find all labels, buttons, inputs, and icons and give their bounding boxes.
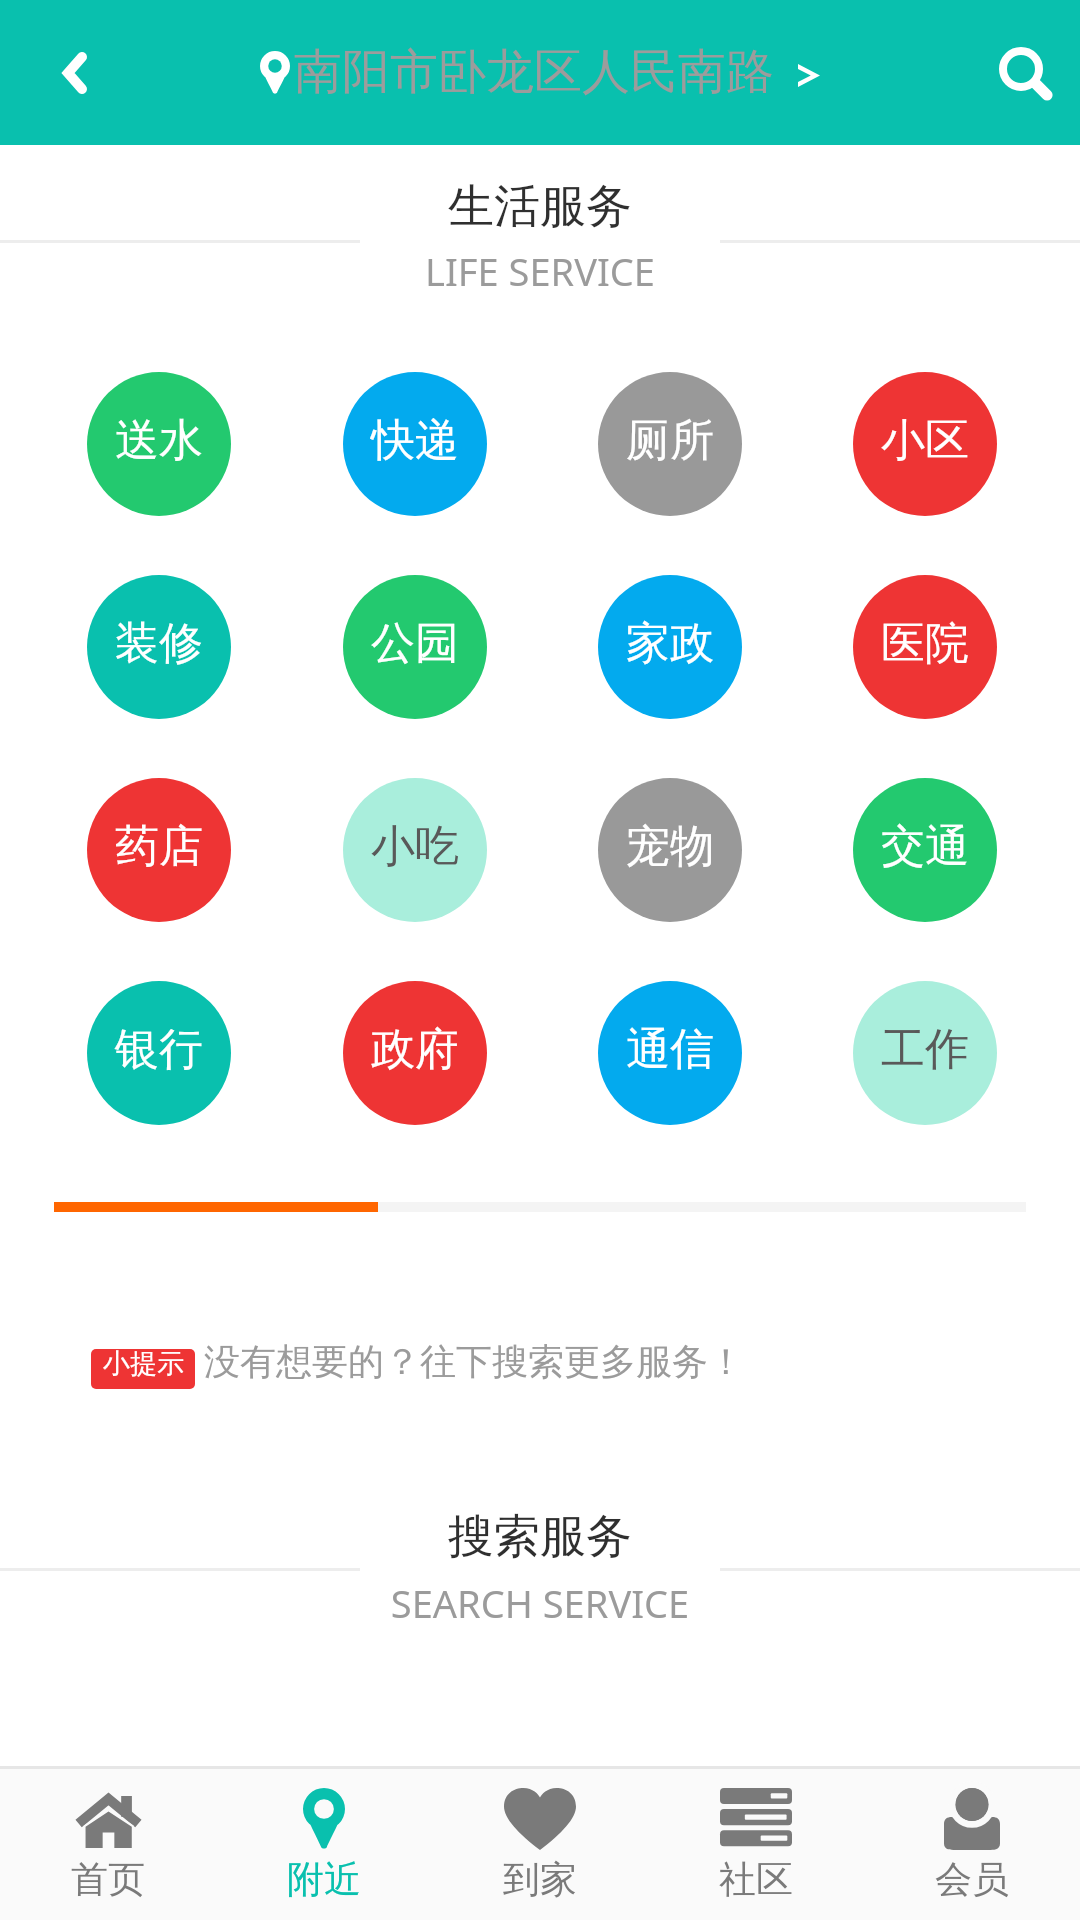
button[interactable]: 附近 — [216, 1769, 432, 1830]
button[interactable]: 快递 — [343, 372, 487, 516]
staticText: 装修 — [115, 616, 203, 671]
staticText: 附近 — [216, 1856, 432, 1903]
staticText: 社区 — [648, 1856, 864, 1903]
button[interactable]: 政府 — [343, 981, 487, 1125]
button[interactable]: Search — [968, 23, 1068, 123]
button[interactable]: 公园 — [343, 575, 487, 719]
staticText: 南阳市卧龙区人民南路 — [294, 42, 774, 102]
staticText: 通信 — [626, 1022, 714, 1077]
staticText: 厕所 — [626, 413, 714, 468]
button[interactable]: 银行 — [87, 981, 231, 1125]
staticText: 搜索服务 — [0, 1508, 1080, 1566]
staticText: 药店 — [115, 819, 203, 874]
button[interactable]: 家政 — [598, 575, 742, 719]
button[interactable]: 厕所 — [598, 372, 742, 516]
staticText: 没有想要的？往下搜索更多服务！ — [204, 1339, 744, 1384]
staticText: SEARCH SERVICE — [0, 1577, 1080, 1629]
staticText: 首页 — [0, 1856, 216, 1903]
staticText: 到家 — [432, 1856, 648, 1903]
button[interactable]: Back — [25, 23, 125, 123]
button[interactable]: 药店 — [87, 778, 231, 922]
button[interactable]: 小提示 — [91, 1349, 195, 1389]
button[interactable]: 小吃 — [343, 778, 487, 922]
staticText: 银行 — [115, 1022, 203, 1077]
staticText: 送水 — [115, 413, 203, 468]
button[interactable]: 工作 — [853, 981, 997, 1125]
staticText: 小区 — [881, 413, 969, 468]
button[interactable]: 到家 — [432, 1769, 648, 1831]
staticText: 公园 — [371, 616, 459, 671]
button[interactable]: 医院 — [853, 575, 997, 719]
button[interactable]: 小区 — [853, 372, 997, 516]
button[interactable]: 首页 — [0, 1769, 216, 1821]
staticText: 生活服务 — [0, 178, 1080, 236]
button[interactable]: 会员 — [864, 1769, 1080, 1831]
button[interactable]: 装修 — [87, 575, 231, 719]
button[interactable]: 交通 — [853, 778, 997, 922]
staticText: 会员 — [864, 1856, 1080, 1903]
staticText: 医院 — [881, 616, 969, 671]
button[interactable]: 送水 — [87, 372, 231, 516]
button[interactable]: 宠物 — [598, 778, 742, 922]
button[interactable]: 南阳市卧龙区人民南路 — [260, 42, 820, 102]
staticText: 快递 — [371, 413, 459, 468]
staticText: 家政 — [626, 616, 714, 671]
button[interactable]: 通信 — [598, 981, 742, 1125]
button[interactable]: 社区 — [648, 1769, 864, 1826]
staticText: 宠物 — [626, 819, 714, 874]
staticText: 政府 — [371, 1022, 459, 1077]
staticText: 小吃 — [371, 819, 459, 874]
staticText: LIFE SERVICE — [0, 245, 1080, 297]
staticText: 工作 — [881, 1022, 969, 1077]
staticText: 交通 — [881, 819, 969, 874]
staticText: 小提示 — [103, 1349, 184, 1381]
